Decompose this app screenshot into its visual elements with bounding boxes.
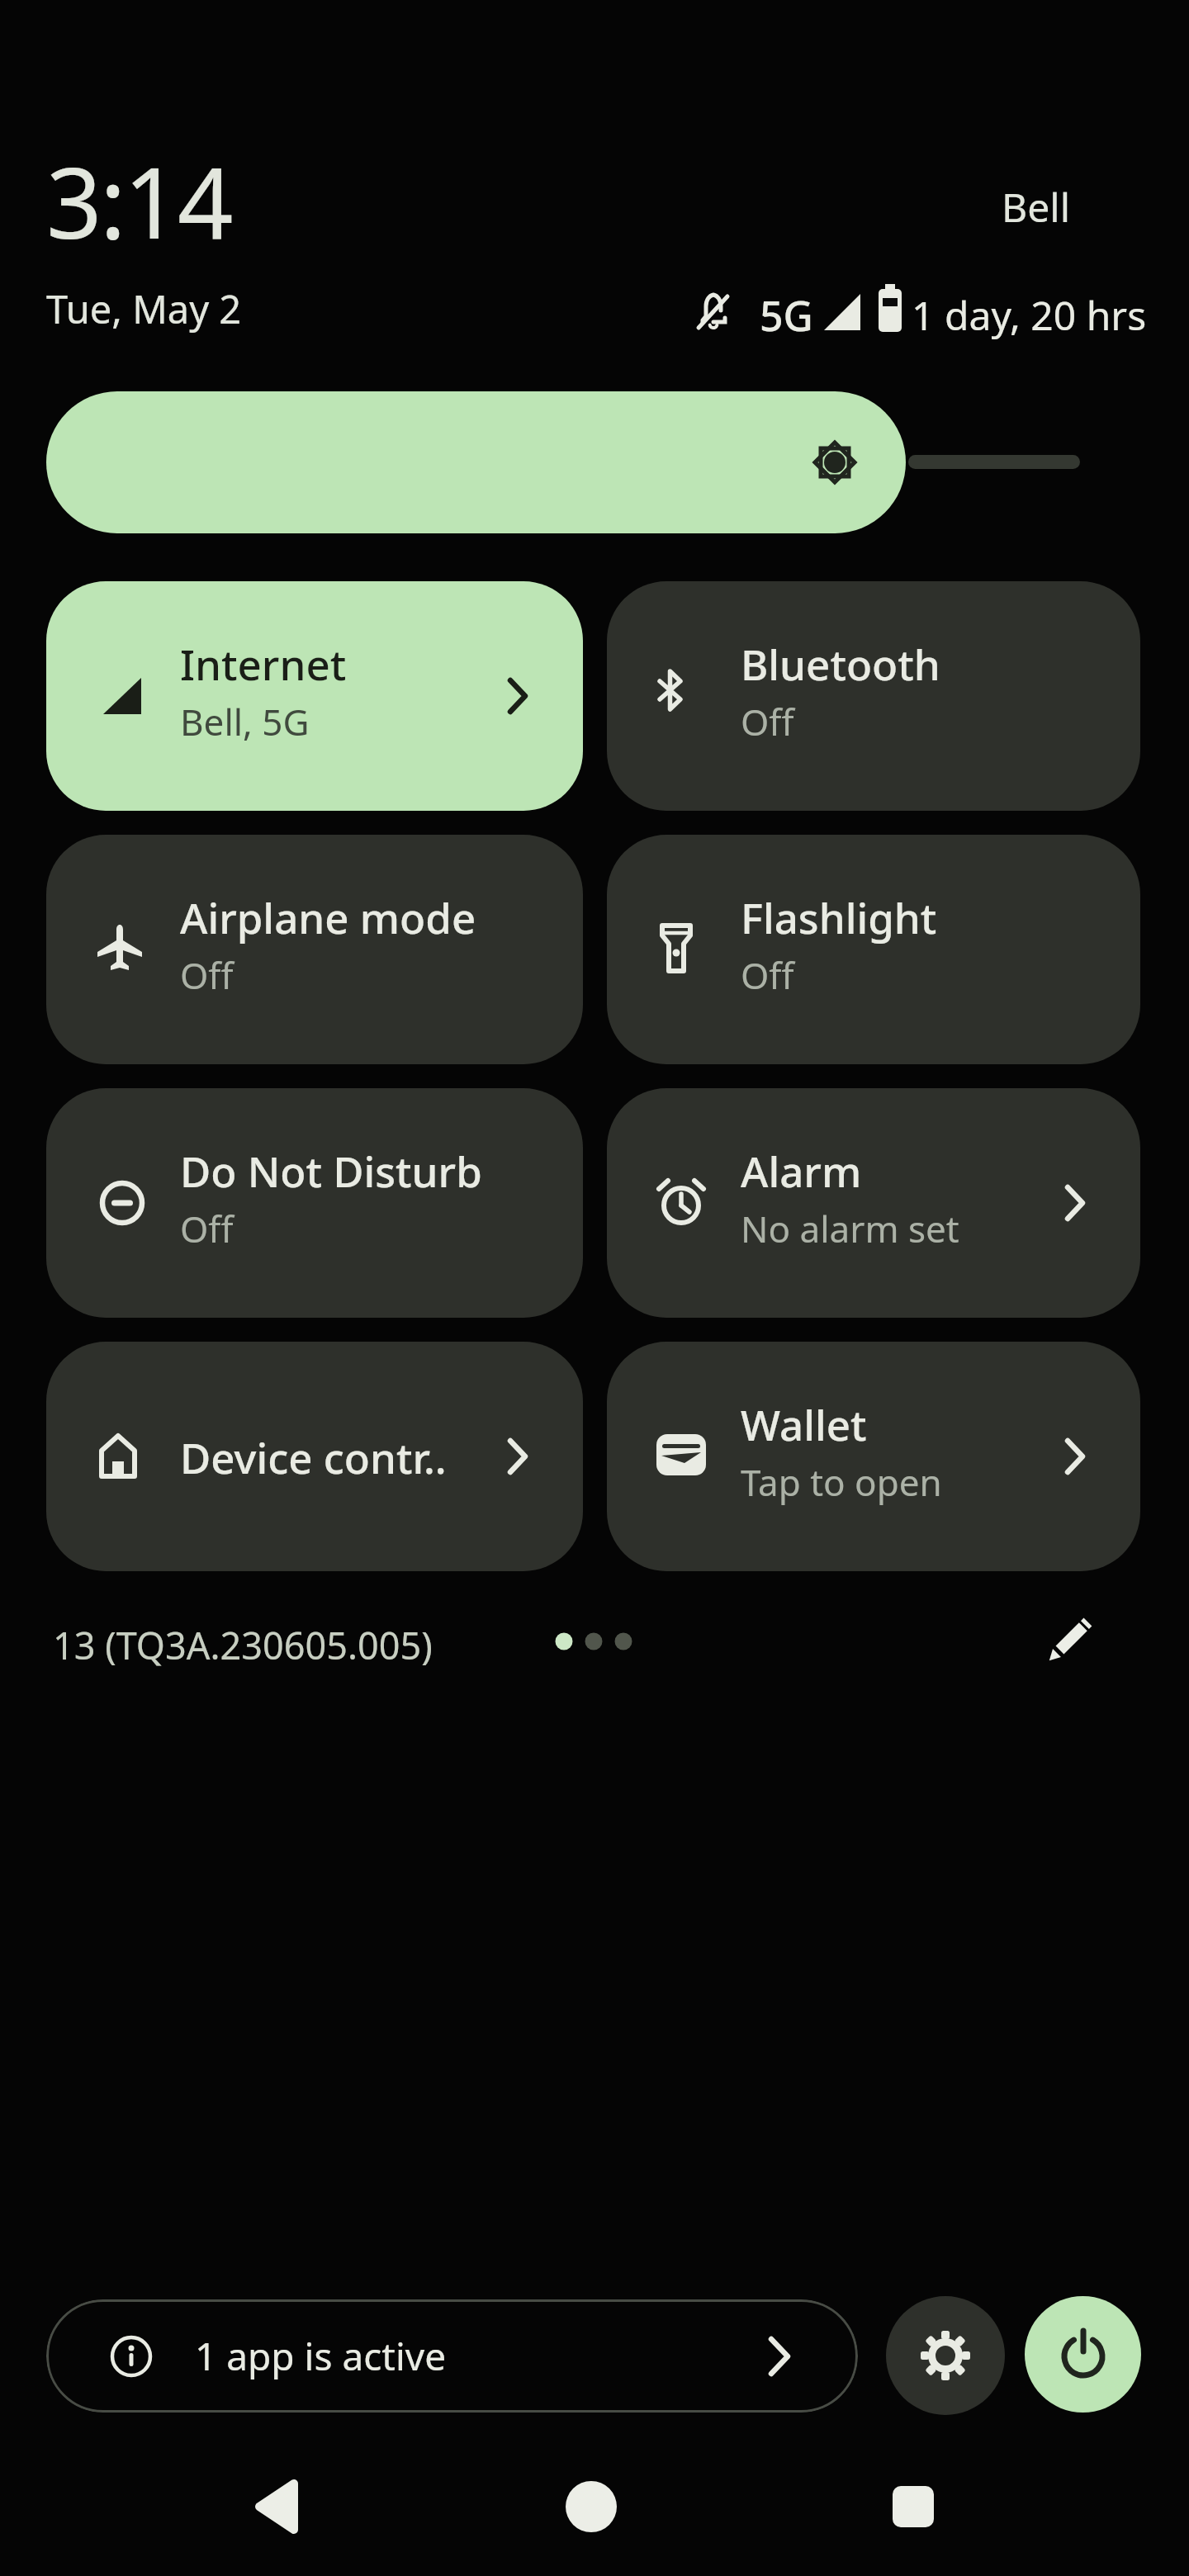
staticText: 3:14 [46, 135, 232, 268]
staticText: Tue, May 2 [46, 282, 242, 335]
staticText: Off [180, 950, 234, 1000]
button[interactable]: Do Not Disturb [46, 1088, 583, 1318]
staticText: Bell [1002, 180, 1071, 234]
staticText: Flashlight [741, 888, 937, 945]
staticText: Bell, 5G [180, 697, 310, 746]
staticText: Tap to open [741, 1457, 942, 1507]
staticText: 1 app is active [195, 2330, 447, 2382]
button[interactable] [886, 2296, 1005, 2415]
staticText: Device contr.. [180, 1428, 447, 1485]
staticText: No alarm set [741, 1204, 959, 1253]
staticText: Off [741, 950, 794, 1000]
button[interactable]: Airplane mode [46, 835, 583, 1064]
staticText: Off [741, 697, 794, 746]
staticText: Bluetooth [741, 635, 940, 692]
staticText: Alarm [741, 1142, 862, 1199]
button[interactable]: Alarm [607, 1088, 1140, 1318]
button[interactable]: Flashlight [607, 835, 1140, 1064]
button[interactable] [1025, 2296, 1141, 2413]
button[interactable]: Wallet [607, 1342, 1140, 1571]
staticText: Wallet [741, 1395, 867, 1452]
button[interactable] [46, 391, 906, 533]
button[interactable]: Internet [46, 581, 583, 811]
staticText: 5G [760, 287, 813, 343]
staticText: Internet [180, 635, 347, 692]
staticText: Airplane mode [180, 888, 476, 945]
button[interactable]: 1 app is active [46, 2299, 858, 2413]
staticText: Off [180, 1204, 234, 1253]
staticText: 13 (TQ3A.230605.005) [53, 1620, 433, 1670]
button[interactable] [880, 2474, 946, 2540]
staticText: Do Not Disturb [180, 1142, 482, 1199]
button[interactable]: Bluetooth [607, 581, 1140, 811]
staticText: 1 day, 20 hrs [912, 288, 1147, 342]
button[interactable]: Device contr.. [46, 1342, 583, 1571]
button[interactable] [244, 2474, 310, 2540]
button[interactable] [558, 2474, 624, 2540]
button[interactable] [1034, 1610, 1100, 1676]
